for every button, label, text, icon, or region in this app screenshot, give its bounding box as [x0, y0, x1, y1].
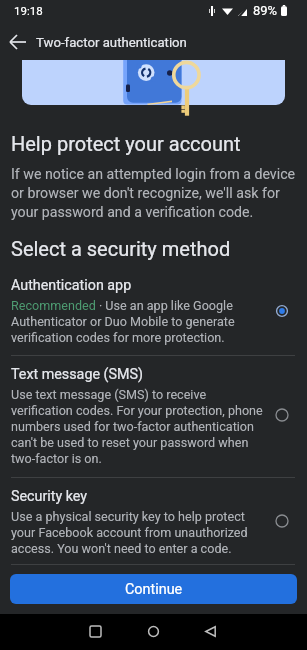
- button[interactable]: Text message (SMS): [272, 405, 292, 425]
- staticText: Use text message (SMS) to receive verifi…: [11, 387, 263, 466]
- staticText: Security key: [11, 488, 88, 505]
- staticText: 89%: [253, 3, 278, 18]
- button[interactable]: Authentication app: [272, 301, 292, 321]
- staticText: Select a security method: [11, 237, 231, 260]
- staticText: Authentication app: [11, 277, 132, 294]
- button[interactable]: Home: [138, 616, 168, 646]
- button[interactable]: Continue: [10, 574, 297, 604]
- button[interactable]: Security key: [11, 488, 263, 556]
- button[interactable]: Security key: [272, 511, 292, 531]
- staticText: Help protect your account: [11, 132, 241, 155]
- staticText: Continue: [125, 581, 183, 598]
- button[interactable]: Text message (SMS): [11, 366, 263, 466]
- staticText: Two-factor authentication: [36, 35, 187, 50]
- staticText: If we notice an attempted login from a d…: [11, 166, 301, 220]
- staticText: Text message (SMS): [11, 366, 143, 383]
- staticText: Use a physical security key to help prot…: [11, 509, 263, 556]
- button[interactable]: Authentication app: [11, 277, 263, 345]
- button[interactable]: Back: [195, 616, 225, 646]
- staticText: Recommended · Use an app like Google Aut…: [11, 298, 263, 345]
- button[interactable]: Recent apps: [80, 616, 110, 646]
- staticText: 19:18: [14, 4, 43, 17]
- button[interactable]: Back: [6, 30, 30, 54]
